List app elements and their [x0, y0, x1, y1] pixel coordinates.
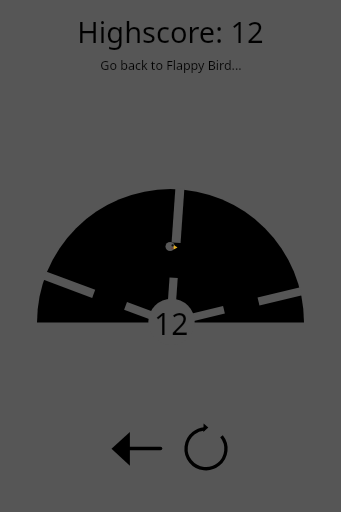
button[interactable]: Back: [105, 425, 170, 470]
staticText: Go back to Flappy Bird...: [100, 57, 242, 74]
staticText: 12: [154, 303, 189, 344]
button[interactable]: Restart: [182, 425, 232, 475]
staticText: Highscore: 12: [77, 12, 264, 51]
